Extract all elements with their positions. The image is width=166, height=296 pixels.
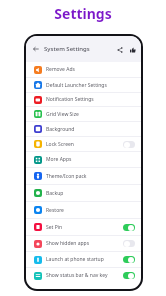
staticText: Show hidden apps	[46, 240, 90, 247]
staticText: Lock Screen	[46, 141, 74, 148]
staticText: Launch at phone startup	[46, 256, 104, 263]
button[interactable]: Launch at phone startup	[26, 251, 141, 267]
button[interactable]: Notification Settings	[26, 92, 141, 106]
staticText: Restore	[46, 207, 64, 214]
button[interactable]: Lock Screen	[26, 136, 141, 151]
button[interactable]: Rate this app	[127, 44, 138, 55]
button[interactable]: Set Pin	[26, 218, 141, 235]
staticText: System Settings	[44, 45, 90, 53]
staticText: Settings	[0, 4, 166, 23]
button[interactable]: Toggle	[123, 256, 135, 263]
button[interactable]: More Apps	[26, 151, 141, 167]
button[interactable]: Back	[31, 44, 41, 54]
button[interactable]: Toggle	[123, 224, 135, 231]
staticText: Grid View Size	[46, 111, 79, 118]
button[interactable]: Show hidden apps	[26, 235, 141, 251]
button[interactable]: Default Launcher Settings	[26, 77, 141, 92]
staticText: Remove Ads	[46, 66, 75, 73]
button[interactable]: Theme/Icon pack	[26, 167, 141, 184]
button[interactable]: Show status bar & nav key	[26, 267, 141, 283]
staticText: Set Pin	[46, 224, 63, 231]
button[interactable]: Grid View Size	[26, 106, 141, 121]
staticText: Notification Settings	[46, 96, 94, 103]
staticText: Show status bar & nav key	[46, 272, 108, 279]
button[interactable]: Background	[26, 121, 141, 136]
button[interactable]: Toggle	[123, 141, 135, 148]
button[interactable]: Remove Ads	[26, 62, 141, 77]
staticText: Backup	[46, 190, 64, 197]
staticText: Default Launcher Settings	[46, 82, 107, 89]
button[interactable]: Toggle	[123, 272, 135, 279]
staticText: More Apps	[46, 156, 72, 163]
staticText: Theme/Icon pack	[46, 173, 87, 180]
button[interactable]: Share	[114, 44, 125, 55]
button[interactable]: Toggle	[123, 240, 135, 247]
staticText: Background	[46, 126, 75, 133]
button[interactable]: Restore	[26, 201, 141, 218]
button[interactable]: Backup	[26, 184, 141, 201]
